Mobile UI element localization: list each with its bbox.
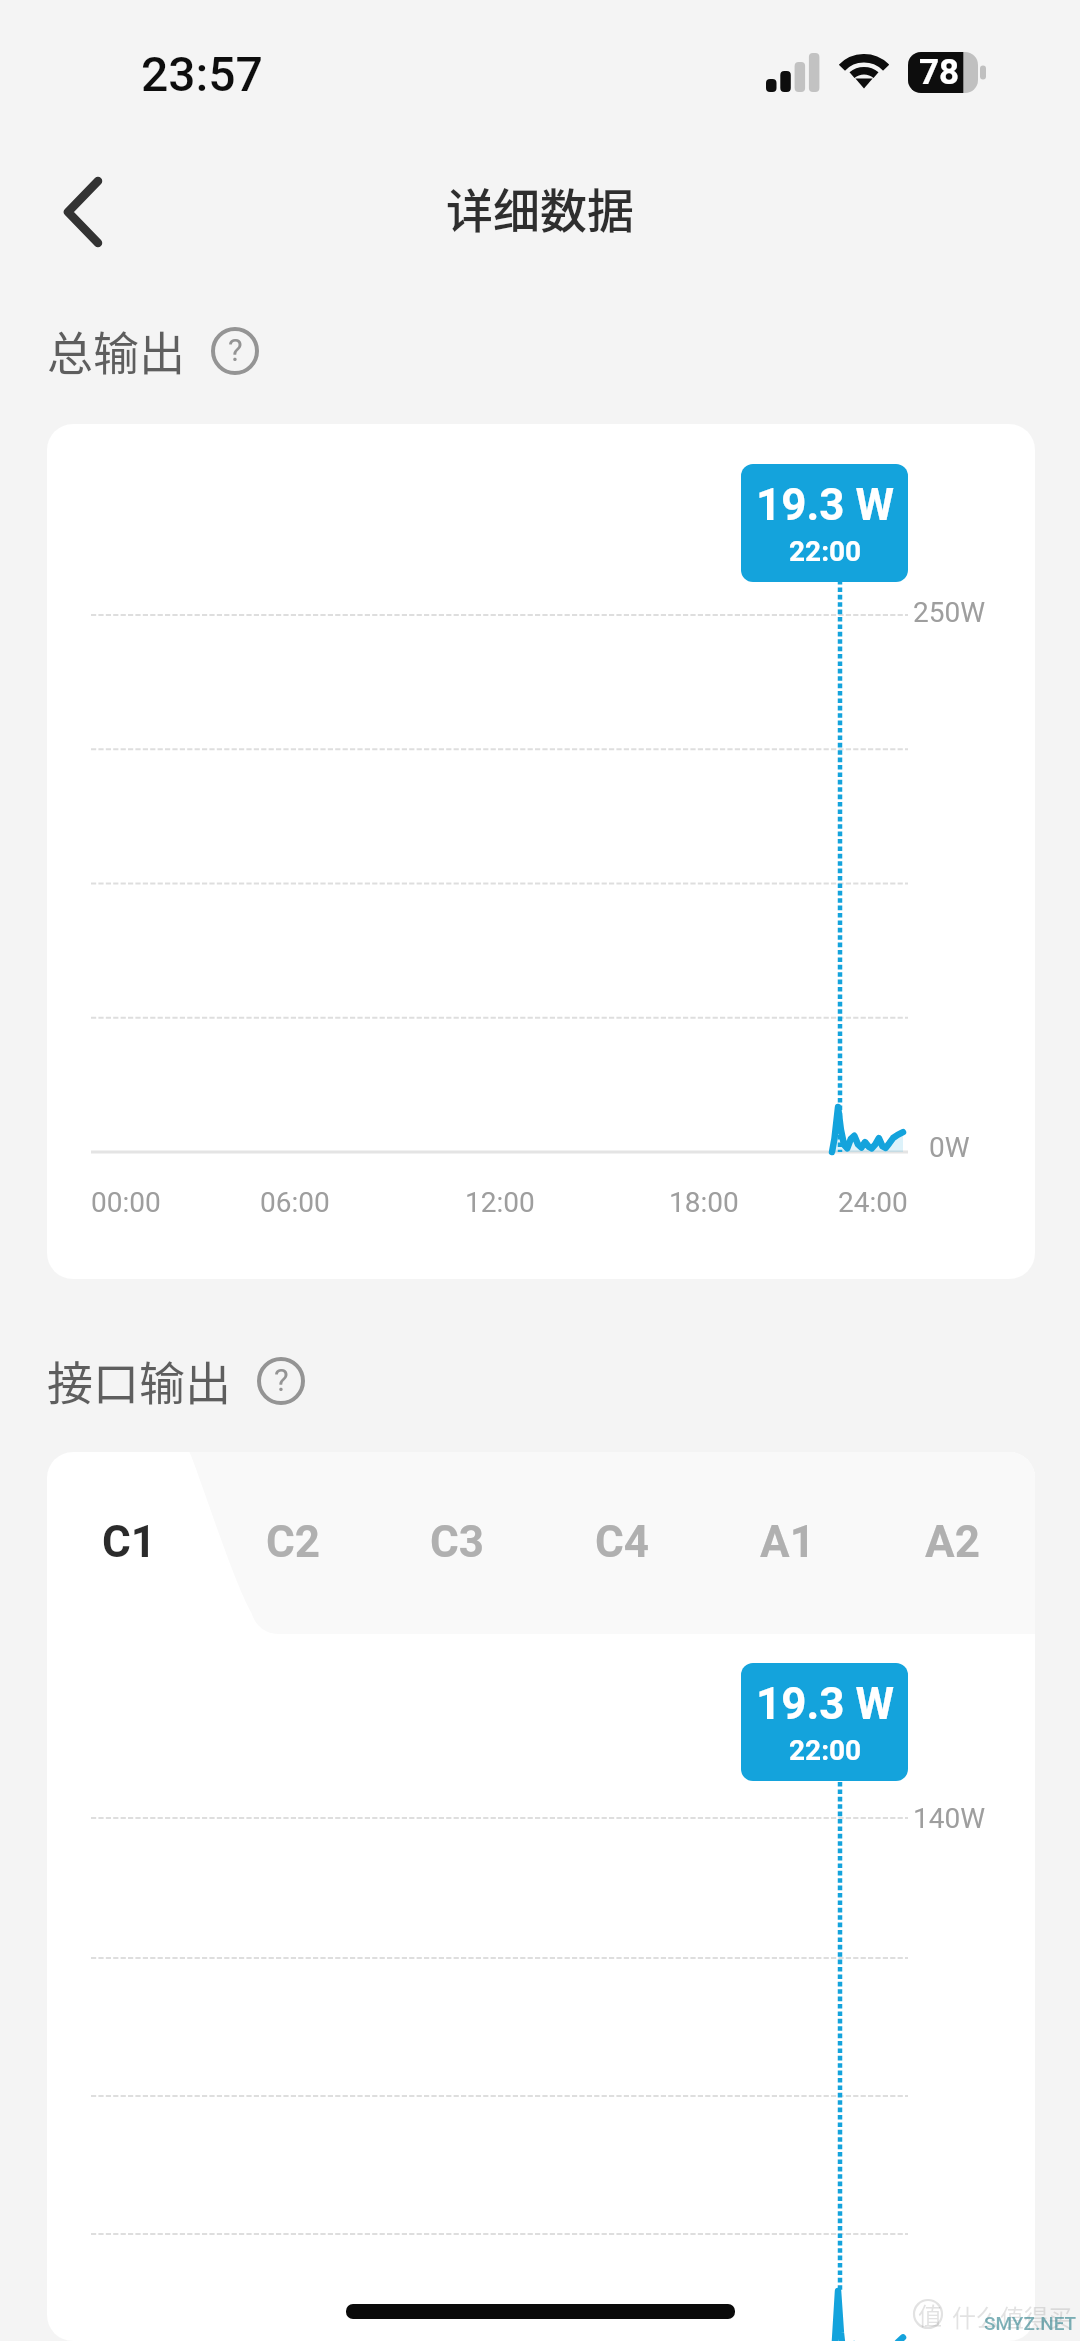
staticText: 什么值得买	[952, 2299, 1072, 2334]
staticText: 250W	[913, 596, 986, 629]
staticText: 78	[919, 52, 960, 93]
staticText: 值	[918, 2297, 942, 2332]
button[interactable]: Help	[211, 327, 259, 375]
staticText: A2	[925, 1516, 980, 1568]
staticText: A1	[760, 1516, 815, 1568]
staticText: 22:00	[789, 535, 862, 568]
staticText: ?	[274, 1362, 289, 1398]
staticText: 接口输出	[47, 1347, 231, 1414]
staticText: 23:57	[141, 46, 263, 102]
staticText: C2	[266, 1516, 321, 1568]
staticText: 24:00	[838, 1186, 908, 1219]
staticText: 19.3 W	[756, 479, 894, 531]
staticText: 140W	[913, 1802, 986, 1835]
button[interactable]: Help	[257, 1357, 305, 1405]
button[interactable]: C2	[211, 1452, 375, 1634]
button[interactable]: C1	[47, 1452, 211, 1634]
staticText: 12:00	[465, 1186, 535, 1219]
staticText: 22:00	[789, 1734, 862, 1767]
staticText: 详细数据	[446, 173, 634, 241]
staticText: 18:00	[669, 1186, 739, 1219]
button[interactable]: A2	[870, 1452, 1035, 1634]
staticText: SMYZ.NET	[984, 2312, 1077, 2334]
button[interactable]: C4	[540, 1452, 705, 1634]
staticText: 06:00	[260, 1186, 330, 1219]
staticText: 0W	[929, 1131, 970, 1164]
staticText: ?	[228, 332, 243, 368]
staticText: 总输出	[47, 317, 185, 384]
button[interactable]: C3	[375, 1452, 540, 1634]
button[interactable]: Back	[38, 164, 134, 260]
staticText: C1	[102, 1516, 157, 1568]
button[interactable]: A1	[705, 1452, 870, 1634]
staticText: C4	[595, 1516, 650, 1568]
staticText: 19.3 W	[756, 1678, 894, 1730]
staticText: 00:00	[91, 1186, 161, 1219]
staticText: C3	[430, 1516, 485, 1568]
